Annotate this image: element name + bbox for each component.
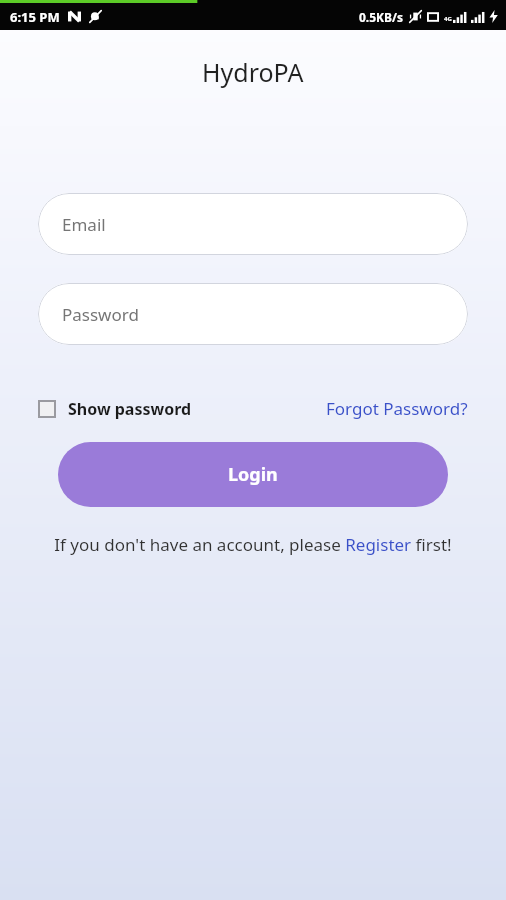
staticText: If you don't have an account, please Reg… [38,533,468,556]
staticText: Login [228,462,278,487]
button[interactable]: Show password [38,398,192,420]
button[interactable]: Forgot Password? [326,397,468,420]
staticText: 0.5KB/s [359,9,404,25]
staticText: Forgot Password? [326,397,468,420]
staticText: Email [62,213,106,236]
staticText: 4G [444,15,452,23]
staticText: Show password [68,398,192,420]
button[interactable]: Email [38,193,468,255]
button[interactable]: Password [38,283,468,345]
staticText: 6:15 PM [10,8,60,26]
staticText: HydroPA [202,55,304,89]
staticText: Password [62,303,139,326]
button[interactable]: Login [58,442,448,507]
button[interactable]: If you don't have an account, please Reg… [38,533,468,556]
